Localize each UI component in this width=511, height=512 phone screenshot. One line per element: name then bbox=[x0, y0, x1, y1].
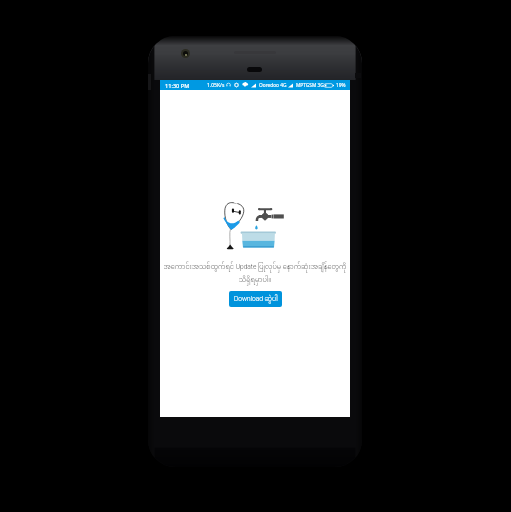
staticText: Download ဆွဲပါ bbox=[234, 292, 278, 306]
staticText: 11:30 PM bbox=[165, 82, 190, 90]
staticText: 1.05K/s bbox=[207, 82, 225, 89]
staticText: MPTGSM 3G bbox=[296, 82, 324, 89]
staticText: အကောင်းအသစ်ထွက်ရင် Update ပြုလုပ်မှ နောက… bbox=[161, 260, 349, 287]
button[interactable]: Download ဆွဲပါ bbox=[229, 291, 282, 307]
staticText: 19% bbox=[336, 82, 346, 89]
staticText: Ooredoo 4G bbox=[259, 82, 287, 89]
